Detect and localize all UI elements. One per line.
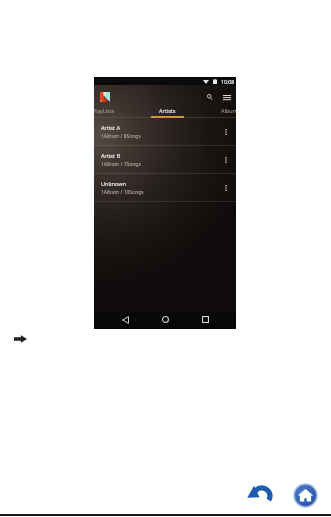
- staticText: PlayLists: [94, 107, 115, 114]
- button[interactable]: PlayLists: [94, 105, 135, 118]
- button[interactable]: Artist A: [94, 118, 236, 146]
- button[interactable]: More options: [221, 183, 231, 193]
- staticText: Artist A: [101, 124, 121, 132]
- staticText: Artists: [159, 107, 176, 114]
- button[interactable]: Back: [247, 484, 272, 506]
- button[interactable]: Artists: [135, 105, 199, 118]
- staticText: 1Album / 8Songs: [101, 133, 141, 140]
- button[interactable]: Artist B: [94, 146, 236, 174]
- staticText: Albums: [221, 107, 236, 114]
- staticText: Artist B: [101, 152, 121, 160]
- button[interactable]: More options: [221, 155, 231, 165]
- staticText: 1Album / 7Songs: [101, 161, 141, 168]
- button[interactable]: Back: [119, 313, 132, 326]
- button[interactable]: App logo: [100, 92, 110, 102]
- button[interactable]: Search: [203, 91, 215, 103]
- staticText: 1Album / 10Songs: [101, 189, 144, 196]
- button[interactable]: More options: [221, 127, 231, 137]
- button[interactable]: Home: [159, 313, 172, 326]
- button[interactable]: Unknown: [94, 174, 236, 202]
- button[interactable]: Home: [293, 483, 318, 508]
- staticText: 10:08: [221, 78, 235, 85]
- button[interactable]: Menu: [221, 91, 233, 103]
- button[interactable]: Recent apps: [199, 313, 212, 326]
- staticText: Unknown: [101, 180, 127, 188]
- button[interactable]: Albums: [199, 105, 236, 118]
